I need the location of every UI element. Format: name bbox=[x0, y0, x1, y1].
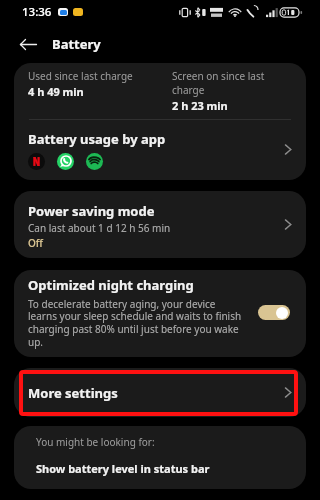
staticText: Battery bbox=[52, 35, 101, 53]
button[interactable]: Battery usage by app bbox=[14, 120, 306, 180]
staticText: 4 h 49 min bbox=[28, 84, 84, 99]
button[interactable]: More settings bbox=[14, 368, 306, 417]
button[interactable]: Power saving mode bbox=[14, 191, 306, 258]
button[interactable]: Back bbox=[14, 30, 42, 58]
staticText: Used since last charge bbox=[28, 69, 133, 83]
staticText: Battery usage by app bbox=[28, 130, 166, 148]
staticText: You might be looking for: bbox=[36, 435, 155, 449]
staticText: Screen on since last charge bbox=[172, 69, 292, 97]
staticText: To decelerate battery aging, your device… bbox=[28, 297, 245, 349]
staticText: More settings bbox=[28, 384, 284, 402]
staticText: Power saving mode bbox=[28, 202, 155, 220]
button[interactable]: Optimized night charging toggle bbox=[258, 305, 290, 320]
staticText: 2 h 23 min bbox=[172, 98, 228, 113]
staticText: 13:36 bbox=[22, 4, 52, 20]
staticText: Can last about 1 d 12 h 56 min bbox=[28, 221, 171, 235]
staticText: Off bbox=[28, 236, 43, 250]
staticText: Show battery level in status bar bbox=[36, 461, 210, 476]
staticText: Optimized night charging bbox=[28, 276, 194, 294]
